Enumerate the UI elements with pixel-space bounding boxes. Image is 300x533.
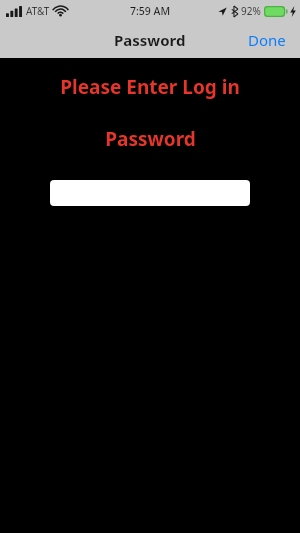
staticText: Password — [105, 126, 196, 152]
staticText: Please Enter Log in — [60, 74, 240, 100]
staticText: Password — [114, 30, 186, 50]
button[interactable]: Password input field — [50, 180, 250, 206]
button[interactable]: Done — [234, 24, 300, 56]
staticText: AT&T — [26, 4, 50, 18]
staticText: Done — [248, 30, 286, 50]
staticText: 92% — [241, 4, 261, 18]
staticText: 7:59 AM — [130, 4, 171, 18]
